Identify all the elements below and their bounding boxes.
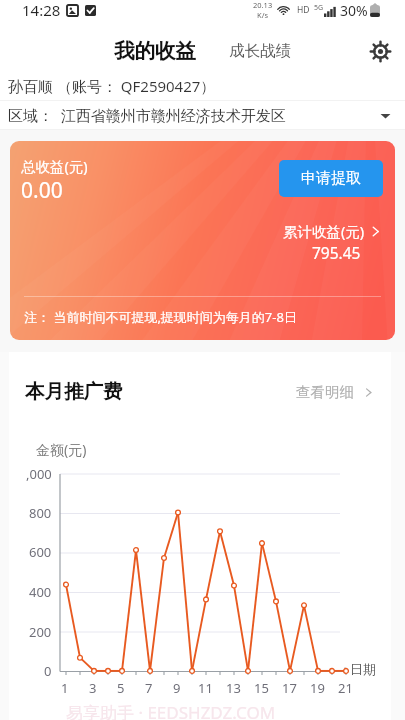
staticText: 1 [61,679,69,697]
staticText: 5G [314,3,324,13]
staticText: 15 [254,679,269,697]
staticText: 我的收益 [114,38,196,64]
staticText: 14:28 [22,0,61,20]
staticText: 总收益(元) [21,156,88,176]
staticText: 19 [310,679,325,697]
staticText: 本月推广费 [25,379,123,404]
staticText: K/s [257,10,269,20]
button[interactable]: 成长战绩 [229,41,291,61]
staticText: 17 [282,679,297,697]
button[interactable]: 我的收益 [114,38,196,64]
staticText: HD [297,4,310,16]
staticText: 795.45 [312,242,361,263]
staticText: 21 [338,679,353,697]
staticText: 0.00 [21,176,63,205]
staticText: 400 [29,583,52,601]
staticText: 11 [198,679,213,697]
staticText: 区域： 江西省赣州市赣州经济技术开发区 [8,105,286,125]
staticText: 200 [29,623,52,641]
button[interactable]: Settings [365,36,395,66]
staticText: 20.13 [253,0,273,10]
staticText: 孙百顺 （账号： QF2590427） [8,76,216,96]
staticText: 3 [89,679,97,697]
button[interactable]: 申请提取 [279,160,383,197]
staticText: 注： 当前时间不可提现,提现时间为每月的7-8日 [24,308,297,326]
staticText: 13 [226,679,241,697]
staticText: 30% [340,1,368,20]
staticText: 7 [145,679,153,697]
button[interactable]: 累计收益(元) [283,221,383,241]
staticText: 累计收益(元) [283,221,365,241]
staticText: 0 [44,662,52,680]
staticText: 金额(元) [36,440,87,459]
staticText: 查看明细 [296,383,354,401]
staticText: 600 [29,543,52,561]
button[interactable]: 区域： 江西省赣州市赣州经济技术开发区 [8,101,391,129]
staticText: 5 [117,679,125,697]
staticText: 易享助手 · EEDSHZDZ.COM [66,701,276,720]
staticText: 800 [29,504,52,522]
staticText: 日期 [350,661,376,677]
staticText: ,000 [26,465,52,483]
button[interactable]: 查看明细 [296,383,375,401]
staticText: 9 [173,679,181,697]
staticText: 成长战绩 [229,41,291,61]
staticText: 申请提取 [301,169,361,188]
